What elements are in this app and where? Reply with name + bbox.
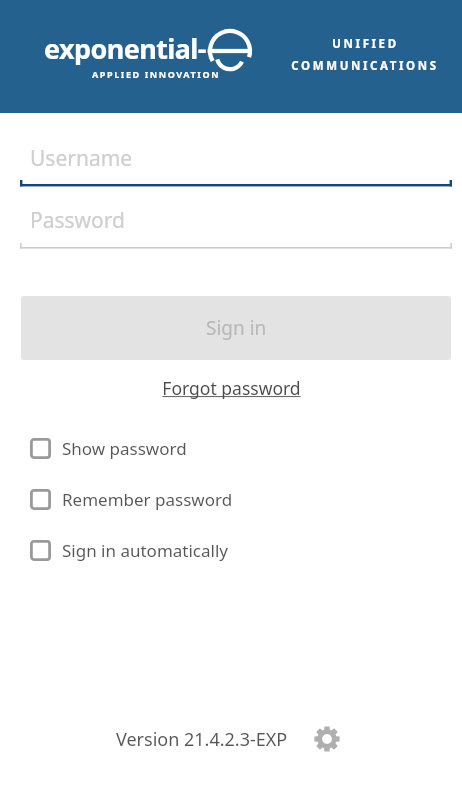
button[interactable]: Forgot password: [0, 374, 462, 402]
button[interactable]: Sign in automatically: [30, 532, 228, 568]
staticText: Show password: [62, 437, 187, 460]
staticText: Username: [30, 144, 133, 173]
button[interactable]: Sign in: [21, 296, 451, 360]
staticText: UNIFIED: [332, 36, 399, 52]
staticText: APPLIED INNOVATION: [92, 68, 221, 80]
button[interactable]: Username: [20, 140, 452, 188]
button[interactable]: Remember password: [30, 481, 233, 517]
staticText: Password: [30, 206, 125, 235]
staticText: Version 21.4.2.3-EXP: [116, 727, 288, 752]
staticText: Forgot password: [162, 376, 301, 400]
staticText: COMMUNICATIONS: [291, 58, 439, 74]
staticText: Remember password: [62, 488, 233, 511]
staticText: exponential-: [44, 30, 206, 67]
button[interactable]: Show password: [30, 430, 187, 466]
button[interactable]: Password: [20, 202, 452, 250]
staticText: Sign in automatically: [62, 539, 228, 562]
staticText: Sign in: [206, 315, 267, 341]
button[interactable]: Settings: [308, 720, 346, 758]
